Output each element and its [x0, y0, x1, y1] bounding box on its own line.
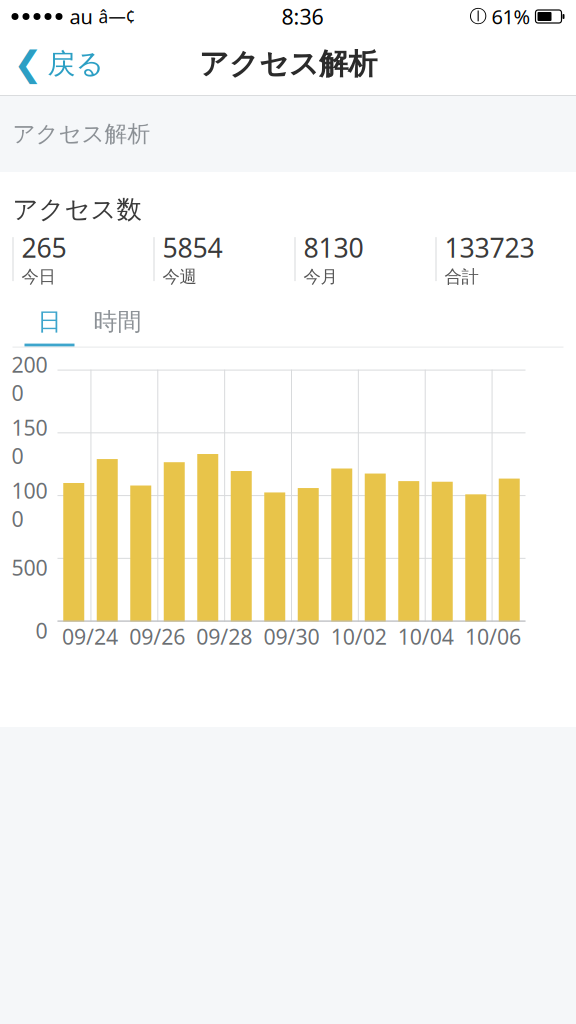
staticText: 日	[37, 307, 61, 337]
button[interactable]: ❮	[0, 36, 104, 92]
staticText: 2000	[11, 350, 47, 407]
staticText: â—¢	[98, 5, 135, 28]
staticText: 10/04	[398, 622, 454, 651]
staticText: 09/28	[196, 622, 252, 651]
button[interactable]: 時間	[74, 307, 147, 347]
staticText: 合計	[444, 266, 478, 287]
staticText: 時間	[93, 307, 141, 337]
staticText: au	[69, 3, 92, 30]
staticText: 今週	[162, 266, 196, 287]
staticText: 8:36	[281, 2, 323, 31]
staticText: 今月	[303, 266, 337, 287]
staticText: 500	[11, 553, 47, 582]
staticText: 61%	[491, 3, 530, 30]
staticText: アクセス数	[12, 194, 141, 225]
staticText: 1500	[11, 413, 47, 470]
staticText: 0	[35, 616, 47, 645]
staticText: 5854	[162, 230, 222, 265]
staticText: ❮	[13, 44, 42, 84]
staticText: ⓛ	[469, 6, 486, 27]
staticText: アクセス解析	[199, 46, 377, 82]
staticText: 09/26	[129, 622, 185, 651]
staticText: 戻る	[47, 47, 104, 81]
staticText: 1000	[11, 476, 47, 533]
button[interactable]: 日	[0, 307, 74, 347]
staticText: 09/24	[62, 622, 118, 651]
staticText: 09/30	[263, 622, 319, 651]
staticText: 10/06	[465, 622, 521, 651]
staticText: アクセス解析	[12, 120, 150, 148]
staticText: 今日	[21, 266, 55, 287]
staticText: 10/02	[331, 622, 387, 651]
staticText: 8130	[303, 230, 363, 265]
staticText: 133723	[444, 230, 534, 265]
staticText: 265	[21, 230, 66, 265]
